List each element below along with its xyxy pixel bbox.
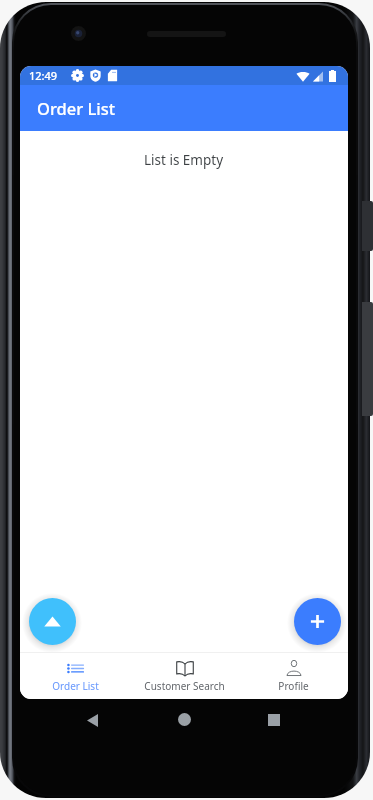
staticText: Order List	[37, 97, 116, 119]
staticText: 12:49	[29, 68, 58, 83]
button[interactable]: Profile	[239, 653, 348, 699]
button[interactable]: Scroll to top	[29, 598, 76, 645]
button[interactable]: Back	[87, 714, 98, 727]
staticText: Profile	[278, 679, 309, 693]
staticText: List is Empty	[144, 151, 224, 169]
button[interactable]: Add order	[294, 598, 341, 645]
staticText: Customer Search	[144, 679, 225, 693]
button[interactable]: Customer Search	[130, 653, 239, 699]
button[interactable]: Order List	[20, 653, 130, 699]
button[interactable]: Home	[178, 713, 191, 726]
staticText: Order List	[52, 679, 99, 693]
